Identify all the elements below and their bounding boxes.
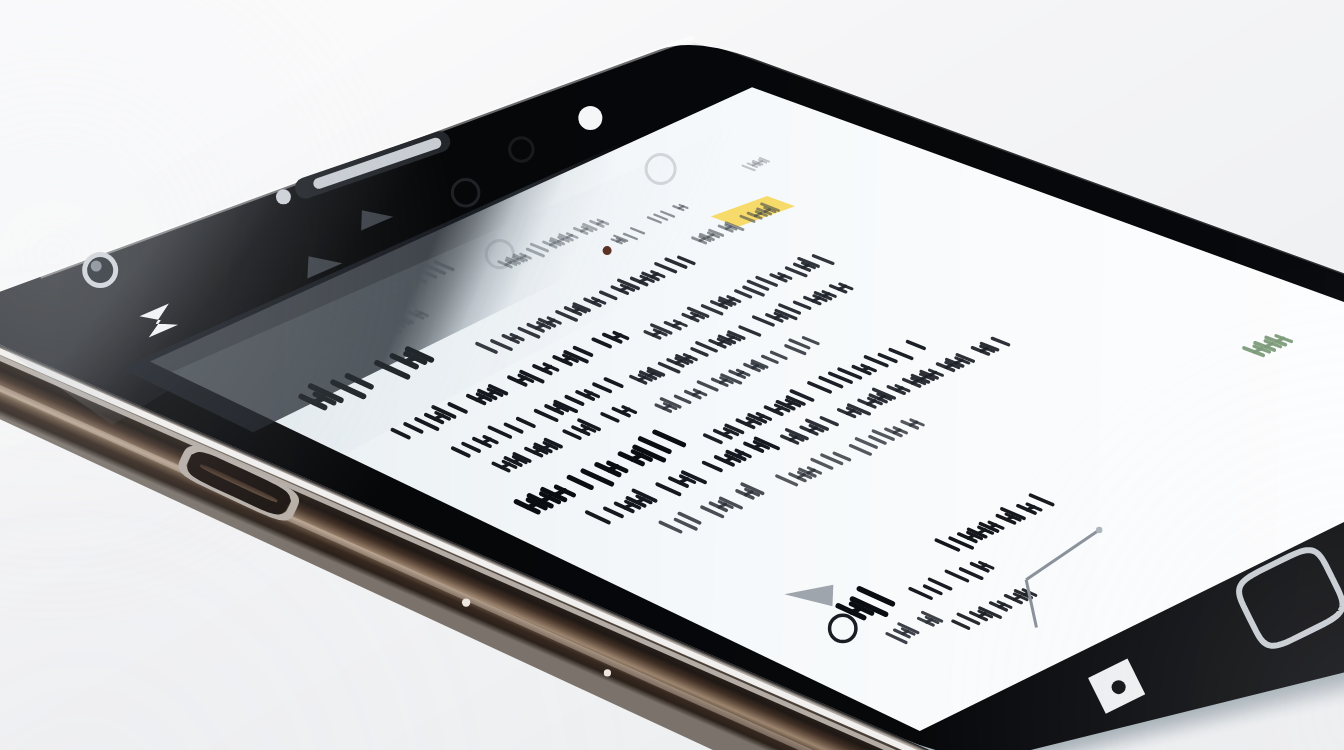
- button[interactable]: Smartphone showing an app screen: [0, 0, 1344, 750]
